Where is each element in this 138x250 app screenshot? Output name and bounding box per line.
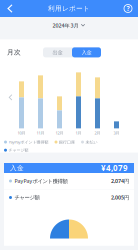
button[interactable]: PayPayポイント獲得額 xyxy=(4,173,134,189)
staticText: 入金 xyxy=(10,164,24,172)
staticText: 月次 xyxy=(7,48,21,56)
staticText: 未払い xyxy=(85,140,97,144)
staticText: 2,005円 xyxy=(111,194,129,201)
staticText: チャージ額 xyxy=(8,148,28,153)
button[interactable]: 2024年 3月 xyxy=(0,17,138,34)
button[interactable]: 出金 xyxy=(43,47,72,57)
staticText: 2月 xyxy=(94,130,100,135)
staticText: 2024年 3月 xyxy=(52,22,78,29)
button[interactable]: Help xyxy=(120,0,136,17)
staticText: 利用レポート xyxy=(48,4,90,13)
button[interactable]: 入金 xyxy=(72,47,101,57)
staticText: 2,074円 xyxy=(111,177,129,185)
staticText: PayPayポイント獲得額 xyxy=(8,139,48,145)
staticText: チャージ額 xyxy=(14,194,39,201)
staticText: ? xyxy=(126,4,129,13)
staticText: 入金 xyxy=(81,49,91,56)
button[interactable]: チャージ額 xyxy=(4,189,134,205)
staticText: 銀行口座 xyxy=(59,140,75,144)
staticText: 11月 xyxy=(36,130,44,135)
staticText: ¥4,079 xyxy=(101,163,128,173)
staticText: 1月 xyxy=(75,130,81,135)
staticText: 12月 xyxy=(55,130,63,135)
staticText: 出金 xyxy=(52,49,62,56)
staticText: 3月 xyxy=(113,130,119,135)
staticText: PayPayポイント獲得額 xyxy=(14,177,67,184)
staticText: 10月 xyxy=(17,130,25,135)
button[interactable]: Back xyxy=(2,0,18,17)
